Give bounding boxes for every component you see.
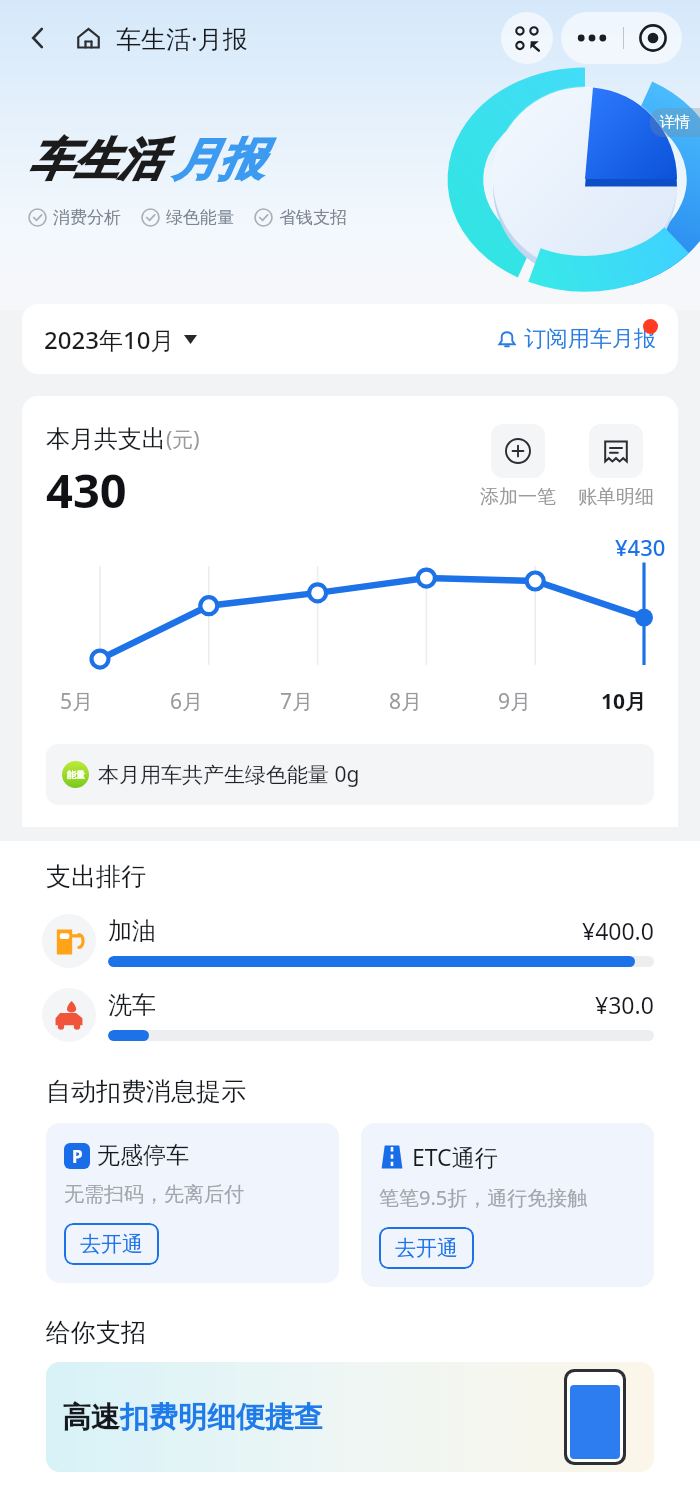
- staticText: 9月: [498, 687, 532, 716]
- button[interactable]: Back: [18, 18, 58, 58]
- button[interactable]: 去开通: [64, 1223, 159, 1265]
- staticText: 去开通: [395, 1235, 458, 1261]
- button[interactable]: More options: [561, 12, 623, 64]
- button[interactable]: 去开通: [379, 1227, 474, 1269]
- staticText: ¥430: [615, 532, 666, 562]
- staticText: 自动扣费消息提示: [46, 1076, 246, 1107]
- button[interactable]: P: [46, 1123, 339, 1283]
- staticText: ¥30.0: [595, 989, 654, 1020]
- staticText: 支出排行: [46, 861, 146, 892]
- staticText: 添加一笔: [480, 485, 556, 509]
- staticText: 扣费明细便捷查: [120, 1399, 323, 1436]
- staticText: 车生活·月报: [116, 21, 248, 55]
- button[interactable]: 加油: [0, 914, 700, 968]
- staticText: 6月: [170, 687, 204, 716]
- staticText: 430: [46, 458, 127, 522]
- staticText: 去开通: [80, 1231, 143, 1257]
- staticText: 无需扫码，先离后付: [64, 1182, 244, 1207]
- button[interactable]: 能量: [46, 744, 654, 805]
- staticText: 10月: [601, 687, 647, 716]
- button[interactable]: 添加一笔: [480, 424, 556, 509]
- button[interactable]: ETC通行: [361, 1123, 654, 1287]
- staticText: 无感停车: [97, 1141, 189, 1170]
- button[interactable]: 洗车: [0, 988, 700, 1042]
- staticText: 车生活: [28, 132, 163, 189]
- staticText: ETC通行: [412, 1141, 498, 1172]
- button[interactable]: 2023年10月: [22, 304, 678, 374]
- staticText: 能量: [67, 769, 85, 780]
- staticText: (元): [166, 425, 200, 454]
- button[interactable]: Home: [68, 18, 108, 58]
- staticText: 绿色能量: [166, 207, 234, 228]
- button[interactable]: 账单明细: [578, 424, 654, 509]
- staticText: 本月共支出: [46, 424, 166, 454]
- staticText: 本月用车共产生绿色能量 0g: [98, 760, 360, 789]
- button[interactable]: Scan: [501, 12, 553, 64]
- staticText: 笔笔9.5折，通行免接触: [379, 1184, 588, 1211]
- button[interactable]: 详情: [650, 108, 700, 137]
- staticText: 8月: [389, 687, 423, 716]
- staticText: 7月: [280, 687, 314, 716]
- staticText: 月报: [173, 132, 263, 189]
- staticText: 账单明细: [578, 485, 654, 509]
- staticText: 高速: [62, 1399, 120, 1436]
- staticText: 订阅用车月报: [524, 325, 656, 353]
- staticText: 5月: [60, 687, 94, 716]
- staticText: P: [72, 1145, 83, 1168]
- staticText: 洗车: [108, 990, 156, 1020]
- staticText: 省钱支招: [279, 207, 347, 228]
- button[interactable]: 订阅用车月报: [495, 325, 656, 353]
- staticText: 详情: [660, 113, 690, 132]
- staticText: 给你支招: [46, 1317, 146, 1348]
- staticText: 加油: [108, 916, 156, 946]
- staticText: 消费分析: [53, 207, 121, 228]
- staticText: 2023年10月: [44, 323, 175, 356]
- button[interactable]: Close: [624, 12, 682, 64]
- button[interactable]: 高速: [46, 1362, 654, 1472]
- staticText: ¥400.0: [582, 915, 654, 946]
